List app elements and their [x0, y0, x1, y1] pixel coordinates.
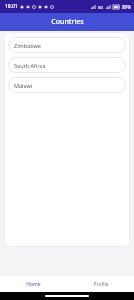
- staticText: South Africa: [14, 62, 46, 69]
- button[interactable]: Profile: [67, 276, 134, 292]
- button[interactable]: South Africa: [8, 57, 126, 73]
- button[interactable]: Zimbabwe: [8, 37, 126, 53]
- staticText: Profile: [93, 281, 109, 288]
- button[interactable]: Home: [0, 276, 67, 292]
- button[interactable]: Malawi: [8, 77, 126, 93]
- staticText: Home: [26, 281, 41, 288]
- staticText: Zimbabwe: [14, 42, 41, 49]
- staticText: 5G: [98, 5, 104, 10]
- staticText: Malawi: [14, 82, 33, 89]
- staticText: 89%: [122, 4, 131, 10]
- staticText: 18:01: [5, 3, 18, 10]
- staticText: Countries: [51, 17, 84, 27]
